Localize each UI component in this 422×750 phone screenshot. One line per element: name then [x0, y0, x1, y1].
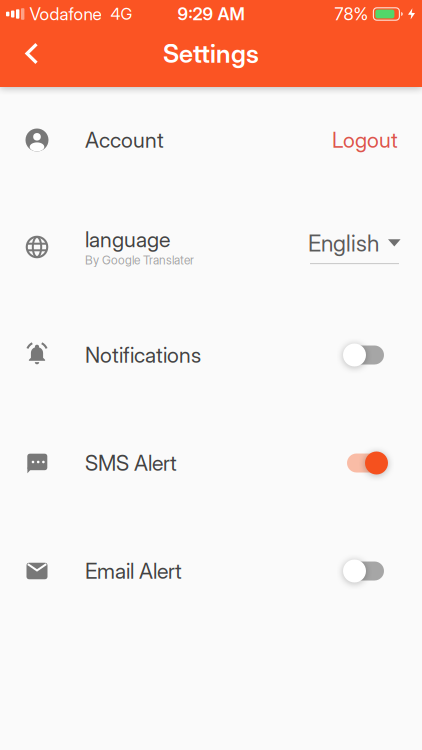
staticText: Account: [85, 127, 164, 153]
button[interactable]: Notifications: Off: [343, 342, 398, 367]
button[interactable]: Email Alert: Off: [343, 558, 398, 583]
staticText: By Google Translater: [85, 253, 194, 267]
staticText: 9:29 AM: [177, 4, 244, 24]
staticText: language: [85, 227, 170, 252]
staticText: Settings: [163, 39, 259, 68]
button[interactable]: Logout: [332, 127, 398, 153]
staticText: English: [308, 230, 379, 257]
staticText: 4G: [110, 5, 132, 23]
staticText: 78%: [334, 4, 368, 24]
button[interactable]: Language: English: [308, 230, 401, 264]
staticText: Email Alert: [85, 558, 182, 584]
staticText: SMS Alert: [85, 450, 177, 476]
staticText: Notifications: [85, 342, 201, 368]
staticText: Logout: [332, 127, 398, 153]
button[interactable]: Back: [0, 35, 51, 72]
staticText: Vodafone: [29, 4, 101, 24]
button[interactable]: SMS Alert: On: [343, 450, 398, 475]
